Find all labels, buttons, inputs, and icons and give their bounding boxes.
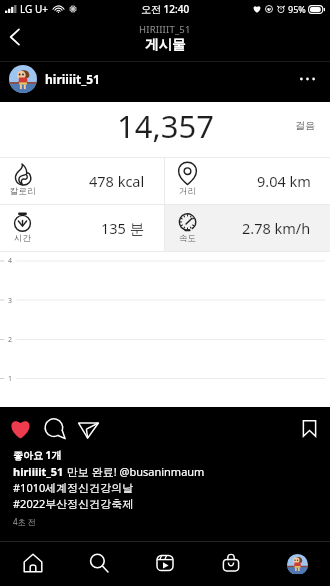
staticText: 속도 (179, 233, 196, 244)
staticText: 478 kcal (89, 171, 145, 191)
staticText: 게시물 (145, 36, 186, 53)
button[interactable]: Save (296, 415, 323, 442)
staticText: HIRIIIIT_51 (139, 23, 191, 36)
staticText: hiriiiit_51 (13, 464, 64, 479)
button[interactable]: Back (0, 22, 30, 52)
button[interactable]: Reels (132, 542, 198, 586)
staticText: 거리 (179, 186, 196, 197)
staticText: 칼로리 (10, 186, 36, 197)
staticText: 14,357 (117, 105, 214, 147)
staticText: #1010세계정신건강의날 (13, 480, 134, 495)
button[interactable]: Shop (198, 542, 264, 586)
button[interactable]: Comment (41, 415, 68, 442)
staticText: 4 (8, 256, 13, 266)
staticText: 4초 전 (13, 516, 36, 527)
button[interactable]: 거리 (165, 158, 330, 204)
staticText: 오전 12:40 (141, 2, 190, 16)
staticText: 좋아요 1개 (13, 448, 62, 462)
staticText: 3 (8, 296, 13, 306)
staticText: 시간 (14, 233, 31, 244)
button[interactable]: 시간 (0, 205, 164, 251)
staticText: 만보 완료! @busaninmaum (64, 464, 205, 479)
button[interactable]: Like (7, 415, 34, 442)
staticText: LG U+ (20, 2, 48, 16)
staticText: 1 (8, 374, 13, 384)
staticText: 95% (288, 3, 306, 15)
button[interactable]: Profile photo (9, 65, 37, 93)
button[interactable]: 칼로리 (0, 158, 164, 204)
staticText: #2022부산정신건강축제 (13, 496, 134, 511)
button[interactable]: Share (75, 415, 102, 442)
button[interactable]: 속도 (165, 205, 330, 251)
button[interactable]: Search (66, 542, 132, 586)
button[interactable]: Profile (264, 542, 330, 586)
staticText: 2 (8, 335, 13, 345)
button[interactable]: Home (0, 542, 66, 586)
button[interactable]: More options (293, 65, 321, 93)
staticText: 2.78 km/h (242, 218, 311, 238)
staticText: 걸음 (295, 119, 315, 132)
staticText: 135 분 (101, 218, 145, 238)
button[interactable]: hiriiiit_51 (45, 71, 100, 87)
staticText: 9.04 km (257, 171, 311, 191)
